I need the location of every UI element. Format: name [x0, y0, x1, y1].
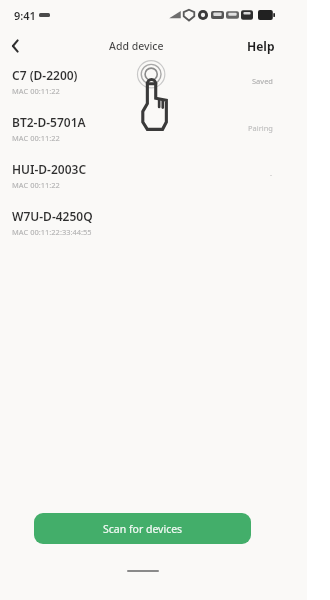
staticText: BT2-D-5701A [12, 114, 86, 130]
staticText: Saved [252, 76, 273, 86]
staticText: MAC 00:11:22 [12, 133, 60, 143]
staticText: MAC 00:11:22 [12, 180, 60, 190]
staticText: HUI-D-2003C [12, 161, 87, 177]
button[interactable]: Back [6, 36, 26, 56]
staticText: Help [247, 38, 275, 54]
staticText: W7U-D-4250Q [12, 208, 93, 224]
staticText: Add device [109, 39, 164, 53]
staticText: Scan for devices [103, 522, 183, 536]
button[interactable]: W7U-D-4250Q [0, 203, 307, 250]
staticText: · [270, 170, 273, 180]
staticText: C7 (D-2200) [12, 67, 78, 83]
staticText: MAC 00:11:22:33:44:55 [12, 227, 92, 237]
staticText: Pairing [248, 123, 273, 133]
button[interactable]: BT2-D-5701A [0, 109, 307, 156]
staticText: MAC 00:11:22 [12, 86, 60, 96]
button[interactable]: Help [244, 35, 278, 57]
button[interactable]: HUI-D-2003C [0, 156, 307, 203]
button[interactable]: Scan for devices [34, 513, 251, 544]
button[interactable]: C7 (D-2200) [0, 62, 307, 109]
staticText: 9:41 [14, 8, 36, 23]
